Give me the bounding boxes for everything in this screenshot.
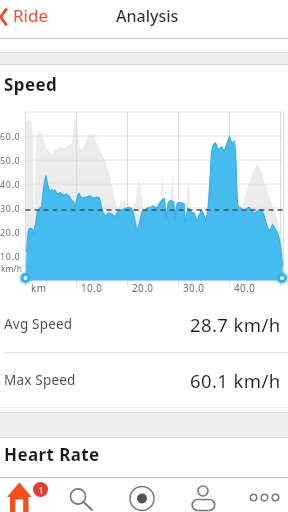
button[interactable] <box>180 478 226 512</box>
button[interactable] <box>118 478 166 512</box>
staticText: 60.1 km/h <box>190 368 281 393</box>
staticText: Avg Speed <box>4 315 73 333</box>
staticText: Max Speed <box>4 371 76 389</box>
button[interactable]: Ride <box>0 0 64 37</box>
staticText: 28.7 km/h <box>190 312 281 337</box>
staticText: 60.0 <box>0 130 21 142</box>
staticText: 50.0 <box>0 154 21 166</box>
button[interactable]: 1 <box>0 478 56 512</box>
staticText: Heart Rate <box>4 443 100 466</box>
staticText: 10.0 <box>0 250 21 262</box>
staticText: 30.0 <box>183 281 205 295</box>
staticText: 20.0 <box>0 226 21 238</box>
staticText: 10.0 <box>81 281 103 295</box>
staticText: 1 <box>38 484 44 496</box>
staticText: 30.0 <box>0 202 21 214</box>
button[interactable] <box>238 478 288 512</box>
staticText: km/h <box>1 263 22 275</box>
staticText: Speed <box>4 73 58 96</box>
staticText: Ride <box>13 4 49 27</box>
staticText: 40.0 <box>234 281 256 295</box>
staticText: km <box>31 281 47 295</box>
staticText: Analysis <box>116 5 179 27</box>
staticText: 20.0 <box>132 281 154 295</box>
staticText: 40.0 <box>0 178 21 190</box>
button[interactable] <box>56 478 102 512</box>
